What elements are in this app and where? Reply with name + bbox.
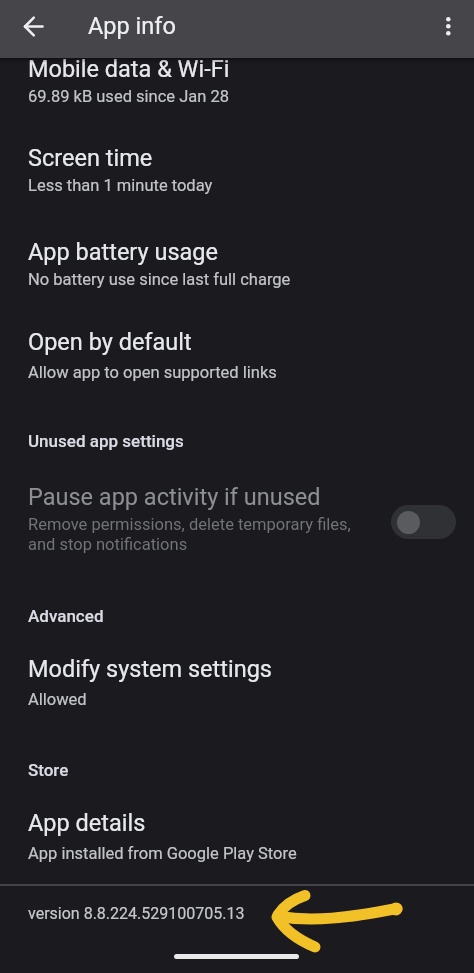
- button[interactable]: [9, 3, 57, 51]
- button[interactable]: Screen time: [0, 129, 474, 223]
- staticText: Advanced: [28, 606, 104, 626]
- button[interactable]: Modify system settings: [0, 640, 474, 734]
- staticText: App details: [28, 809, 146, 837]
- staticText: Unused app settings: [28, 431, 184, 451]
- staticText: Less than 1 minute today: [28, 176, 213, 195]
- staticText: Allowed: [28, 690, 87, 709]
- staticText: App battery usage: [28, 238, 219, 266]
- staticText: Pause app activity if unused: [28, 483, 321, 511]
- button[interactable]: Pause app activity if unused: [0, 468, 474, 578]
- staticText: Store: [28, 760, 69, 780]
- staticText: App info: [88, 12, 176, 40]
- staticText: Modify system settings: [28, 655, 272, 683]
- staticText: Allow app to open supported links: [28, 363, 277, 382]
- staticText: 69.89 kB used since Jan 28: [28, 87, 229, 106]
- staticText: No battery use since last full charge: [28, 270, 291, 289]
- staticText: Mobile data & Wi-Fi: [28, 55, 230, 83]
- staticText: Open by default: [28, 328, 192, 356]
- staticText: version 8.8.224.529100705.13: [28, 904, 245, 923]
- button[interactable]: [424, 2, 472, 50]
- button[interactable]: Open by default: [0, 313, 474, 407]
- staticText: Remove permissions, delete temporary fil…: [28, 515, 351, 554]
- button[interactable]: App details: [0, 794, 474, 888]
- staticText: Screen time: [28, 144, 153, 172]
- button[interactable]: [391, 505, 456, 539]
- staticText: App installed from Google Play Store: [28, 844, 297, 863]
- button[interactable]: Mobile data & Wi-Fi: [0, 40, 474, 134]
- button[interactable]: App battery usage: [0, 223, 474, 317]
